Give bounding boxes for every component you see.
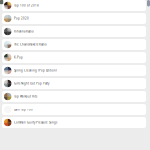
button[interactable]: Girls Night Out Pop Party [2, 78, 146, 89]
button[interactable]: Top 100 of 2014 [2, 0, 146, 11]
staticText: Latin Top 100 [14, 108, 33, 111]
staticText: Pop 2020 [14, 17, 29, 20]
staticText: Rihanna Radio [14, 30, 34, 33]
button[interactable]: Pop 2020 [2, 13, 146, 24]
staticText: Top 100 of 2014 [14, 4, 39, 7]
button[interactable]: Top Workout Hits [2, 91, 146, 102]
staticText: K-Pop [14, 56, 23, 59]
button[interactable]: The Chainsmokers Radio [2, 39, 146, 50]
button[interactable]: K-Pop [2, 52, 146, 63]
button[interactable]: Rihanna Radio [2, 26, 146, 37]
button[interactable]: Latin Top 100 [2, 104, 146, 115]
button[interactable]: Common Guilty Pleasure Songs [2, 117, 146, 128]
staticText: Top Workout Hits [14, 95, 37, 98]
staticText: The Chainsmokers Radio [14, 43, 47, 46]
staticText: Spring Cleaning (Pop Edition) [14, 69, 57, 72]
button[interactable]: Spring Cleaning (Pop Edition) [2, 65, 146, 76]
staticText: Girls Night Out Pop Party [14, 82, 49, 85]
staticText: Common Guilty Pleasure Songs [14, 121, 57, 124]
